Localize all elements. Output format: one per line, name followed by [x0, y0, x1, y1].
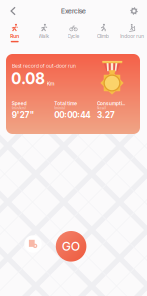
staticText: 00:00:44: [54, 110, 90, 120]
staticText: (min/s): [54, 106, 65, 110]
button[interactable]: Settings: [121, 1, 147, 21]
staticText: Speed: [12, 100, 27, 106]
button[interactable]: Climb: [88, 19, 118, 46]
button[interactable]: Walk: [29, 19, 59, 46]
staticText: (kcal): [97, 106, 106, 110]
staticText: Total time: [54, 100, 77, 106]
button[interactable]: Back: [0, 1, 26, 21]
staticText: Best record of out-door run: [12, 63, 76, 69]
staticText: Exercise: [61, 7, 86, 15]
staticText: 0.08: [11, 69, 45, 88]
staticText: 9'27": [12, 110, 34, 120]
staticText: GO: [62, 239, 80, 254]
button[interactable]: Cycle: [59, 19, 88, 46]
staticText: Consumpti...: [97, 100, 125, 106]
staticText: Climb: [97, 33, 109, 39]
staticText: (min/km): [12, 106, 26, 110]
button[interactable]: GO: [56, 231, 86, 262]
staticText: Run: [10, 33, 19, 39]
staticText: Cycle: [67, 33, 79, 39]
staticText: Km: [47, 80, 55, 87]
button[interactable]: Indoor run: [118, 19, 147, 46]
staticText: Walk: [39, 33, 50, 39]
button[interactable]: Run: [0, 19, 29, 46]
button[interactable]: Workout options: [24, 235, 42, 253]
staticText: 3.27: [97, 110, 115, 120]
staticText: Indoor run: [120, 33, 144, 39]
